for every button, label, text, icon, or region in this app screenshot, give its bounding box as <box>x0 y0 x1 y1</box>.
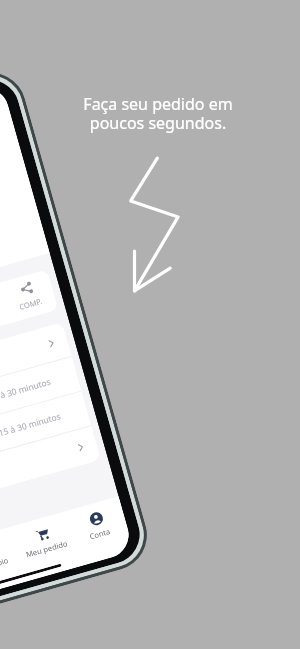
button[interactable]: Tempo <box>0 357 81 447</box>
staticText: COMP. <box>18 296 44 312</box>
button[interactable]: COMP. <box>0 269 56 316</box>
button[interactable]: Conta <box>67 505 128 546</box>
staticText: Cardápio <box>0 555 10 573</box>
staticText: Faça seu pedido em poucos segundos. <box>83 93 233 134</box>
staticText: Entrega: 20 à 30 minutos <box>0 376 52 414</box>
button[interactable]: AVALIAR <box>0 283 7 330</box>
button[interactable]: Endereço de entrega <box>0 322 72 412</box>
button[interactable]: Meu pedido <box>13 520 74 561</box>
staticText: Conta <box>88 526 112 541</box>
button[interactable]: Pagamento <box>0 426 101 516</box>
staticText: Meu pedido <box>25 538 69 559</box>
button[interactable]: Retirar <box>0 391 91 482</box>
button[interactable]: Cardápio <box>0 535 21 576</box>
staticText: Retirada: 15 à 30 minutos <box>0 410 62 450</box>
